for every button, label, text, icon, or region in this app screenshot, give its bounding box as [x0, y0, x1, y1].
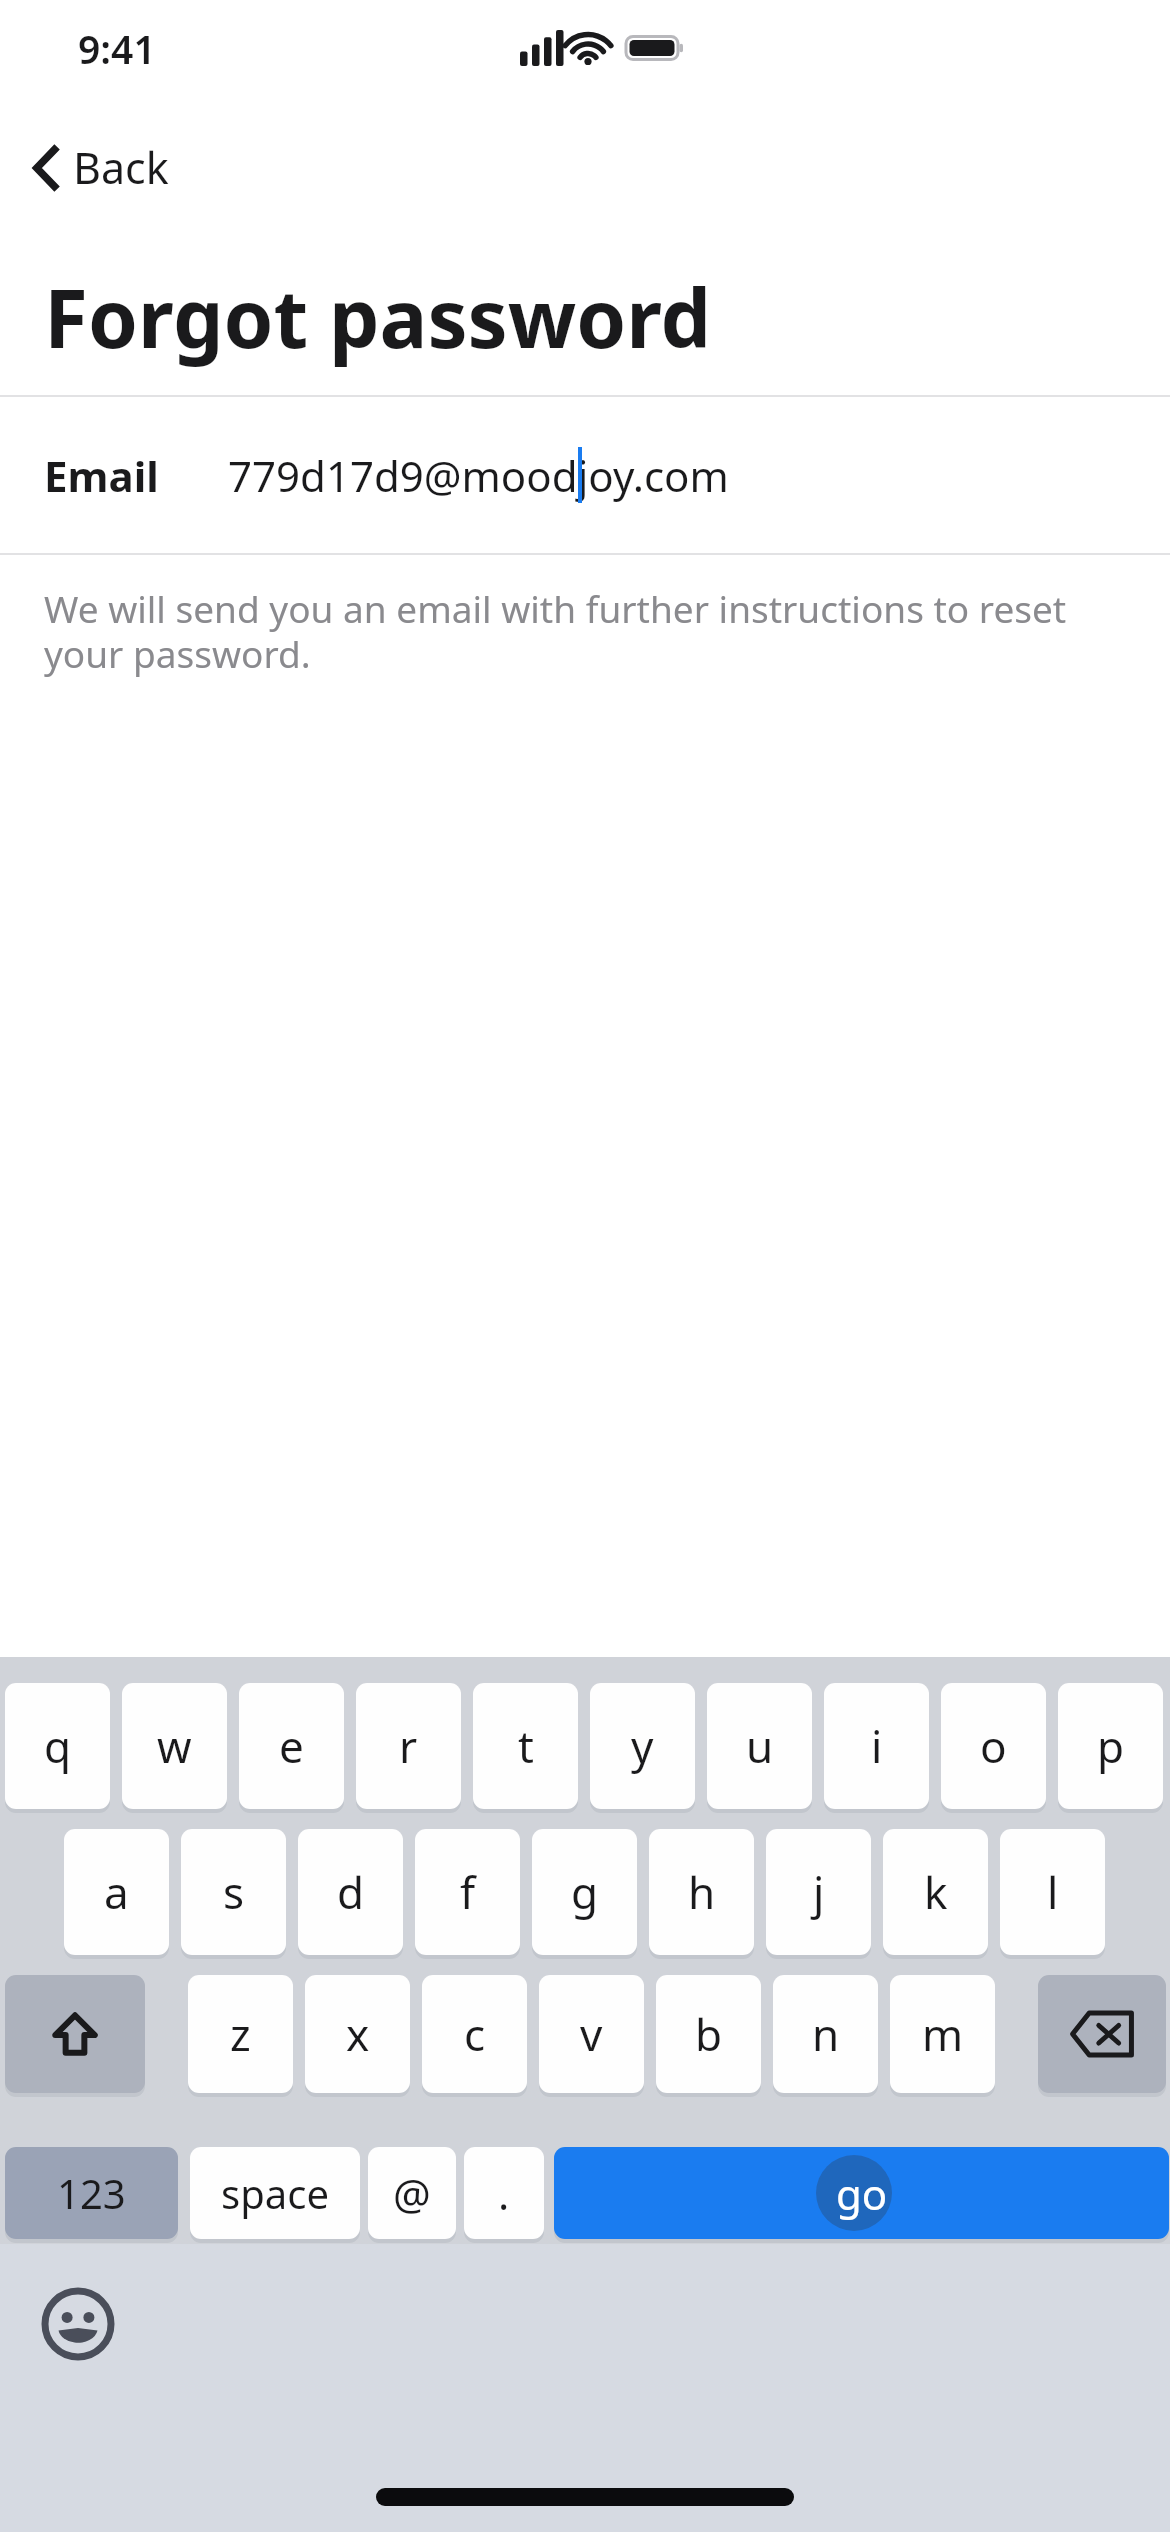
staticText: Forgot password	[44, 262, 711, 371]
staticText: c	[464, 2004, 486, 2064]
button[interactable]: f	[415, 1829, 520, 1955]
button[interactable]: v	[539, 1975, 644, 2093]
button[interactable]: z	[188, 1975, 293, 2093]
button[interactable]: Back	[0, 125, 1170, 210]
staticText: d	[337, 1862, 365, 1922]
staticText: g	[571, 1862, 599, 1922]
staticText: j	[813, 1862, 825, 1922]
button[interactable]: e	[239, 1683, 344, 1809]
staticText: We will send you an email with further i…	[44, 583, 1098, 679]
staticText: .	[498, 2165, 510, 2222]
button[interactable]: y	[590, 1683, 695, 1809]
button[interactable]: u	[707, 1683, 812, 1809]
button[interactable]: i	[824, 1683, 929, 1809]
staticText: @	[393, 2165, 431, 2222]
button[interactable]: space	[190, 2147, 360, 2239]
button[interactable]: o	[941, 1683, 1046, 1809]
staticText: m	[922, 2004, 964, 2064]
button[interactable]: j	[766, 1829, 871, 1955]
button[interactable]: 123	[5, 2147, 178, 2239]
button[interactable]: a	[64, 1829, 169, 1955]
staticText: v	[580, 2004, 603, 2064]
staticText: y	[631, 1716, 654, 1776]
staticText: space	[221, 2166, 329, 2220]
button[interactable]: s	[181, 1829, 286, 1955]
staticText: n	[812, 2004, 840, 2064]
button[interactable]: n	[773, 1975, 878, 2093]
staticText: e	[279, 1716, 304, 1776]
staticText: h	[688, 1862, 716, 1922]
button[interactable]: d	[298, 1829, 403, 1955]
staticText: 123	[57, 2166, 126, 2220]
staticText: b	[695, 2004, 723, 2064]
button[interactable]: p	[1058, 1683, 1163, 1809]
button[interactable]: x	[305, 1975, 410, 2093]
button[interactable]: t	[473, 1683, 578, 1809]
button[interactable]: w	[122, 1683, 227, 1809]
staticText: l	[1047, 1862, 1059, 1922]
button[interactable]: b	[656, 1975, 761, 2093]
button[interactable]: h	[649, 1829, 754, 1955]
button[interactable]: l	[1000, 1829, 1105, 1955]
button[interactable]: r	[356, 1683, 461, 1809]
button[interactable]: @	[368, 2147, 456, 2239]
staticText: f	[460, 1862, 476, 1922]
staticText: z	[230, 2004, 251, 2064]
button[interactable]: g	[532, 1829, 637, 1955]
staticText: r	[399, 1716, 418, 1776]
staticText: q	[44, 1716, 72, 1776]
staticText: o	[980, 1716, 1007, 1776]
staticText: s	[223, 1862, 245, 1922]
staticText: 779d17d9@moodjoy.com	[228, 447, 729, 504]
staticText: t	[518, 1716, 534, 1776]
staticText: 9:41	[78, 22, 198, 75]
button[interactable]: .	[464, 2147, 544, 2239]
staticText: Back	[73, 138, 169, 197]
button[interactable]: q	[5, 1683, 110, 1809]
staticText: u	[746, 1716, 774, 1776]
button[interactable]: c	[422, 1975, 527, 2093]
staticText: Email	[44, 447, 159, 504]
staticText: k	[924, 1862, 948, 1922]
staticText: w	[157, 1716, 192, 1776]
button[interactable]: Emoji	[40, 2286, 116, 2362]
staticText: p	[1097, 1716, 1125, 1776]
staticText: a	[104, 1862, 129, 1922]
button[interactable]: m	[890, 1975, 995, 2093]
staticText: i	[871, 1716, 883, 1776]
button[interactable]: go	[554, 2147, 1169, 2239]
staticText: go	[836, 2165, 888, 2222]
button[interactable]: k	[883, 1829, 988, 1955]
button[interactable]: Backspace	[1038, 1975, 1166, 2093]
staticText: x	[346, 2004, 370, 2064]
button[interactable]: Email	[0, 397, 1170, 553]
button[interactable]: Shift	[5, 1975, 145, 2093]
